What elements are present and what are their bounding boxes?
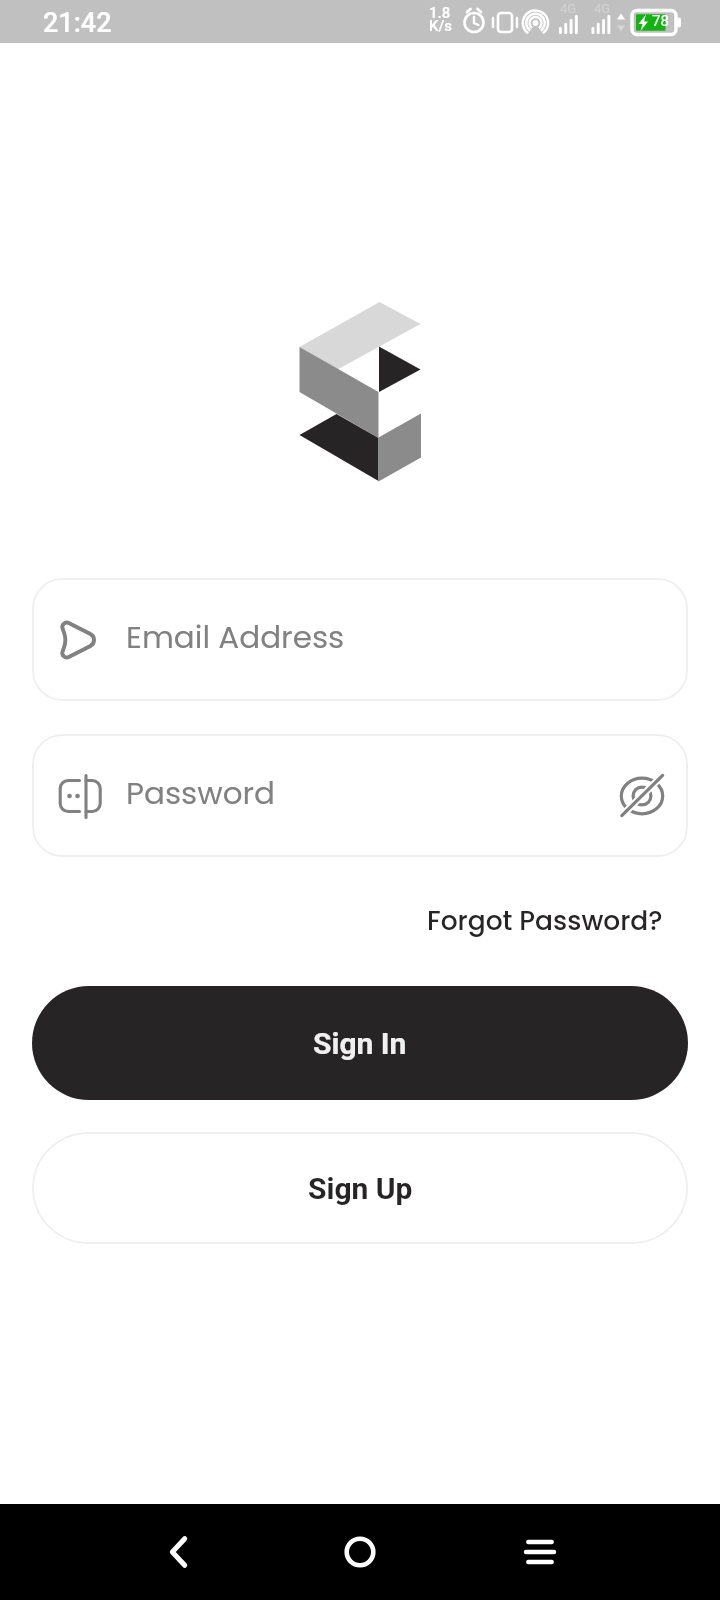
staticText: 4G: [594, 1, 611, 16]
button[interactable]: Forgot Password?: [427, 902, 663, 939]
button[interactable]: Back: [140, 1504, 220, 1600]
staticText: Sign In: [313, 1026, 407, 1061]
button[interactable]: Sign Up: [32, 1132, 688, 1244]
staticText: 4G: [560, 1, 577, 16]
button[interactable]: Recent apps: [500, 1504, 580, 1600]
staticText: 1.8: [429, 4, 451, 22]
staticText: Email Address: [126, 615, 345, 658]
staticText: K/s: [429, 17, 453, 35]
staticText: 21:42: [43, 7, 112, 39]
staticText: Forgot Password?: [427, 902, 663, 939]
button[interactable]: Show password: [614, 768, 670, 824]
button[interactable]: Sign In: [32, 986, 688, 1100]
staticText: Sign Up: [308, 1171, 413, 1206]
staticText: 78: [652, 12, 669, 30]
button[interactable]: Password: [32, 734, 688, 857]
staticText: Password: [126, 771, 276, 814]
button[interactable]: Home: [320, 1504, 400, 1600]
button[interactable]: Email Address: [32, 578, 688, 701]
